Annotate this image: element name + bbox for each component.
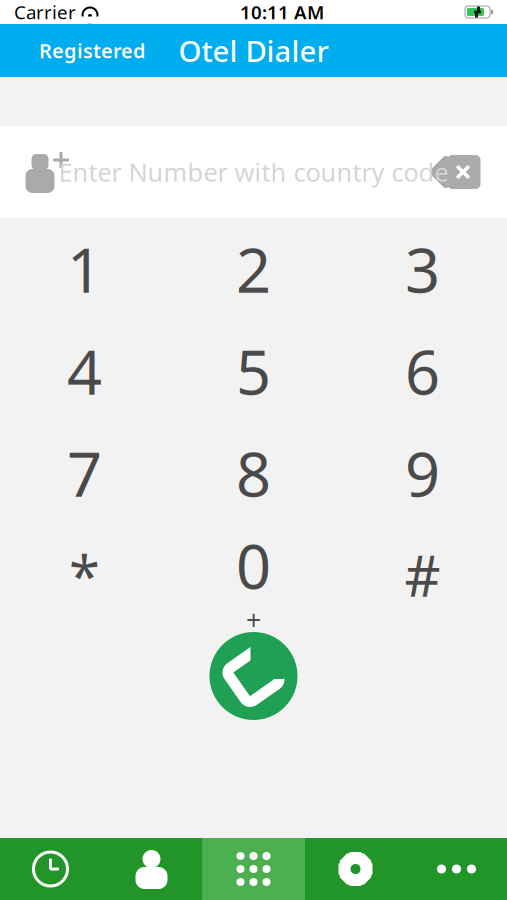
button[interactable]: 4 [0, 320, 169, 422]
staticText: Registered [39, 37, 146, 64]
staticText: 2 [236, 228, 271, 310]
button[interactable]: 9 [338, 422, 507, 524]
button[interactable]: 6 [338, 320, 507, 422]
button[interactable]: * [0, 524, 169, 626]
staticText: 5 [236, 330, 271, 412]
staticText: 1 [67, 228, 102, 310]
staticText: 4 [67, 330, 102, 412]
staticText: # [404, 538, 440, 612]
button[interactable]: Registered [27, 27, 158, 74]
button[interactable]: Delete [421, 136, 495, 208]
button[interactable]: 0 [169, 524, 338, 626]
button[interactable]: 7 [0, 422, 169, 524]
staticText: 3 [405, 228, 440, 310]
staticText: 8 [236, 432, 271, 514]
staticText: 9 [405, 432, 440, 514]
button[interactable]: 3 [338, 218, 507, 320]
staticText: Enter Number with country code [58, 155, 448, 189]
button[interactable]: 1 [0, 218, 169, 320]
button[interactable]: Settings [305, 838, 406, 900]
button[interactable]: More [406, 838, 507, 900]
staticText: * [69, 538, 100, 612]
button[interactable]: Contacts [101, 838, 202, 900]
staticText: + [246, 602, 261, 637]
staticText: 10:11 AM [240, 0, 324, 24]
staticText: 7 [67, 432, 102, 514]
button[interactable]: 5 [169, 320, 338, 422]
button[interactable]: Add contact [12, 136, 82, 208]
button[interactable]: Keypad [202, 838, 305, 900]
staticText: Otel Dialer [178, 31, 328, 70]
button[interactable]: Call [203, 626, 303, 726]
staticText: Carrier [14, 0, 76, 24]
staticText: 6 [405, 330, 440, 412]
button[interactable]: # [338, 524, 507, 626]
button[interactable]: 8 [169, 422, 338, 524]
button[interactable]: 2 [169, 218, 338, 320]
staticText: 0 [236, 525, 271, 606]
button[interactable]: Recents [0, 838, 101, 900]
